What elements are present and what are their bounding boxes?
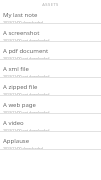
staticText: A screenshot (3, 29, 40, 37)
button[interactable]: A video (0, 117, 101, 135)
staticText: 2013/11/00 downloaded (3, 20, 43, 23)
staticText: My last note (3, 11, 38, 19)
button[interactable]: Applause (0, 135, 101, 153)
staticText: 2013/11/00 not downloaded (3, 74, 50, 77)
staticText: A video (3, 119, 24, 127)
staticText: 2013/11/00 not downloaded (3, 92, 50, 95)
staticText: 2013/11/00 downloaded (3, 146, 43, 149)
button[interactable]: A xml file (0, 63, 101, 81)
staticText: A web page (3, 101, 36, 109)
staticText: 2013/11/00 not downloaded (3, 56, 50, 59)
staticText: A pdf document (3, 47, 49, 55)
button[interactable]: A pdf document (0, 45, 101, 63)
staticText: Applause (3, 137, 30, 145)
staticText: 2013/11/00 not downloaded (3, 110, 50, 113)
staticText: 2013/11/00 not downloaded (3, 38, 50, 41)
button[interactable]: A web page (0, 99, 101, 117)
button[interactable]: A zipped file (0, 81, 101, 99)
staticText: A xml file (3, 65, 29, 73)
button[interactable]: A screenshot (0, 27, 101, 45)
staticText: A zipped file (3, 83, 38, 91)
button[interactable]: My last note (0, 9, 101, 27)
staticText: 2013/11/00 not downloaded (3, 128, 50, 131)
staticText: ASSETS (42, 2, 59, 7)
